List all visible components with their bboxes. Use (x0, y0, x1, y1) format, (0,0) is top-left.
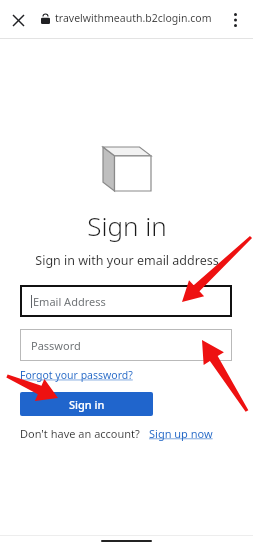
button[interactable]: Sign in (20, 392, 153, 416)
staticText: Sign in (69, 397, 105, 412)
button[interactable]: Forgot your password? (20, 368, 133, 382)
staticText: Password (31, 338, 81, 353)
button[interactable]: Sign up now (149, 426, 213, 441)
button[interactable]: Close (6, 8, 30, 32)
staticText: travelwithmeauth.b2clogin.com (55, 11, 212, 25)
button[interactable]: More options (222, 7, 248, 33)
staticText: Sign up now (149, 426, 213, 441)
button[interactable]: Password (20, 329, 232, 361)
staticText: Email Address (33, 294, 106, 309)
staticText: Sign in (87, 208, 167, 243)
staticText: Don't have an account? (20, 426, 140, 441)
staticText: Sign in with your email address (35, 252, 219, 269)
staticText: Forgot your password? (20, 368, 133, 382)
button[interactable]: Email Address (20, 285, 232, 317)
